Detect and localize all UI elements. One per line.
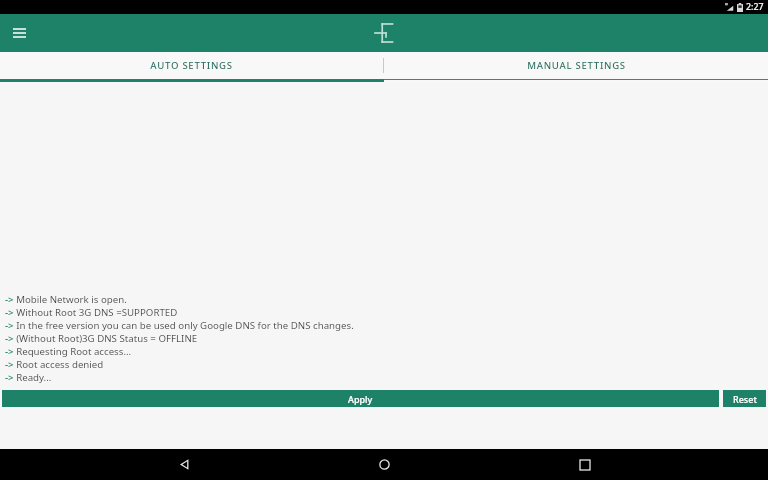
staticText: MANUAL SETTINGS — [527, 59, 626, 72]
staticText: Apply — [348, 393, 373, 405]
button[interactable]: AUTO SETTINGS — [0, 52, 383, 79]
staticText: -> Mobile Network is open. — [5, 293, 127, 306]
staticText: 2:27 — [746, 1, 764, 13]
staticText: Reset — [733, 393, 757, 405]
staticText: -> Root access denied — [5, 358, 104, 371]
staticText: AUTO SETTINGS — [150, 59, 233, 72]
button[interactable]: Reset — [723, 390, 766, 407]
button[interactable]: Open navigation menu — [6, 20, 32, 46]
staticText: -> Without Root 3G DNS =SUPPORTED — [5, 306, 178, 319]
button[interactable]: MANUAL SETTINGS — [384, 52, 768, 79]
staticText: -> In the free version you can be used o… — [5, 319, 354, 332]
button[interactable]: Recent apps — [568, 449, 602, 480]
button[interactable]: Back — [167, 449, 201, 480]
staticText: -> Ready... — [5, 371, 52, 384]
staticText: -> Requesting Root access... — [5, 345, 132, 358]
staticText: -> (Without Root)3G DNS Status = OFFLINE — [5, 332, 198, 345]
button[interactable]: Apply — [2, 390, 719, 407]
button[interactable]: Home — [367, 449, 401, 480]
